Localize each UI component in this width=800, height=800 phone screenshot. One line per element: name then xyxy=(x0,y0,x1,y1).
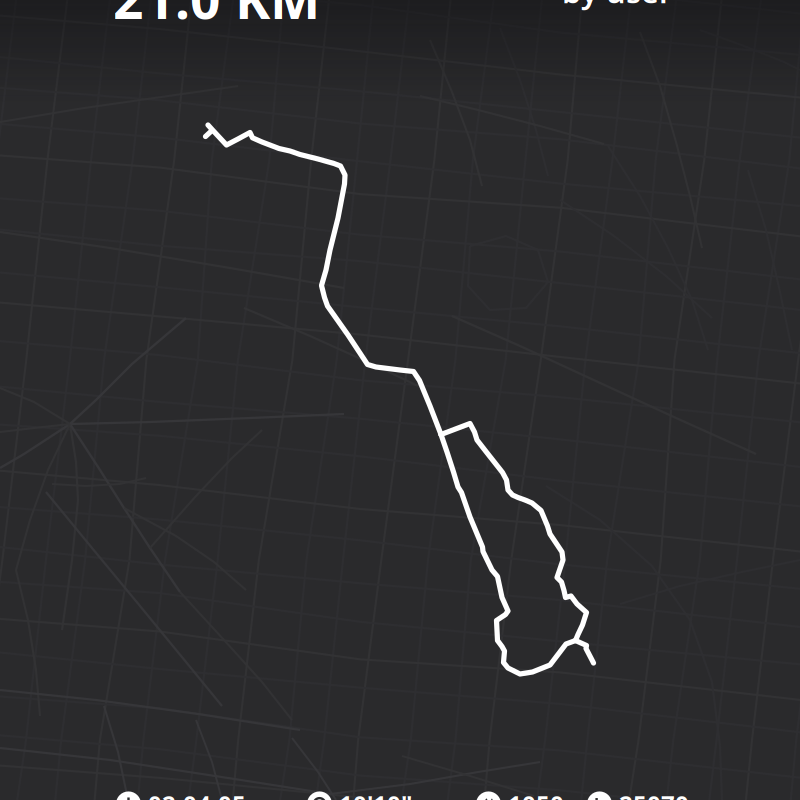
staticText: 21.0 KM xyxy=(113,0,320,34)
staticText: 25070 xyxy=(619,788,689,800)
staticText: by user xyxy=(562,0,672,12)
staticText: 1050 xyxy=(508,788,564,800)
staticText: 10'10" xyxy=(339,788,412,800)
staticText: 02:04:05 xyxy=(148,788,246,800)
